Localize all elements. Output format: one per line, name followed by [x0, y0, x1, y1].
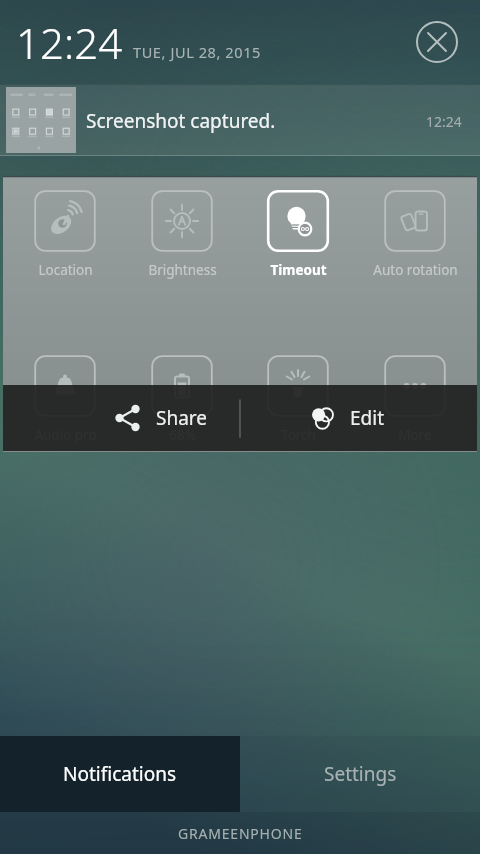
button[interactable]: Share — [111, 401, 208, 435]
staticText: GRAMEENPHONE — [178, 824, 303, 843]
button[interactable]: Notifications — [0, 736, 240, 812]
staticText: Brightness — [148, 261, 217, 279]
staticText: 12:24 — [16, 14, 123, 71]
button[interactable]: 68% — [127, 355, 237, 444]
button[interactable]: Screenshot captured. — [0, 84, 480, 156]
button[interactable]: Audio pro — [10, 355, 120, 444]
staticText: Screenshot captured. — [86, 108, 276, 134]
button[interactable]: Close — [414, 19, 460, 65]
staticText: Auto rotation — [373, 261, 458, 279]
staticText: Timeout — [270, 261, 327, 279]
staticText: Share — [156, 405, 208, 431]
staticText: Location — [38, 261, 93, 279]
button[interactable]: Settings — [240, 736, 480, 812]
button[interactable]: Timeout — [243, 190, 353, 279]
staticText: Notifications — [63, 761, 177, 787]
staticText: Settings — [324, 761, 397, 787]
staticText: TUE, JUL 28, 2015 — [133, 42, 261, 62]
button[interactable]: Torch — [243, 355, 353, 444]
button[interactable]: Edit — [305, 401, 385, 435]
button[interactable]: Auto rotation — [360, 190, 470, 279]
staticText: Edit — [350, 405, 385, 431]
staticText: 12:24 — [426, 112, 462, 131]
button[interactable]: Location — [10, 190, 120, 279]
button[interactable]: Brightness — [127, 190, 237, 279]
button[interactable]: More — [360, 355, 470, 444]
